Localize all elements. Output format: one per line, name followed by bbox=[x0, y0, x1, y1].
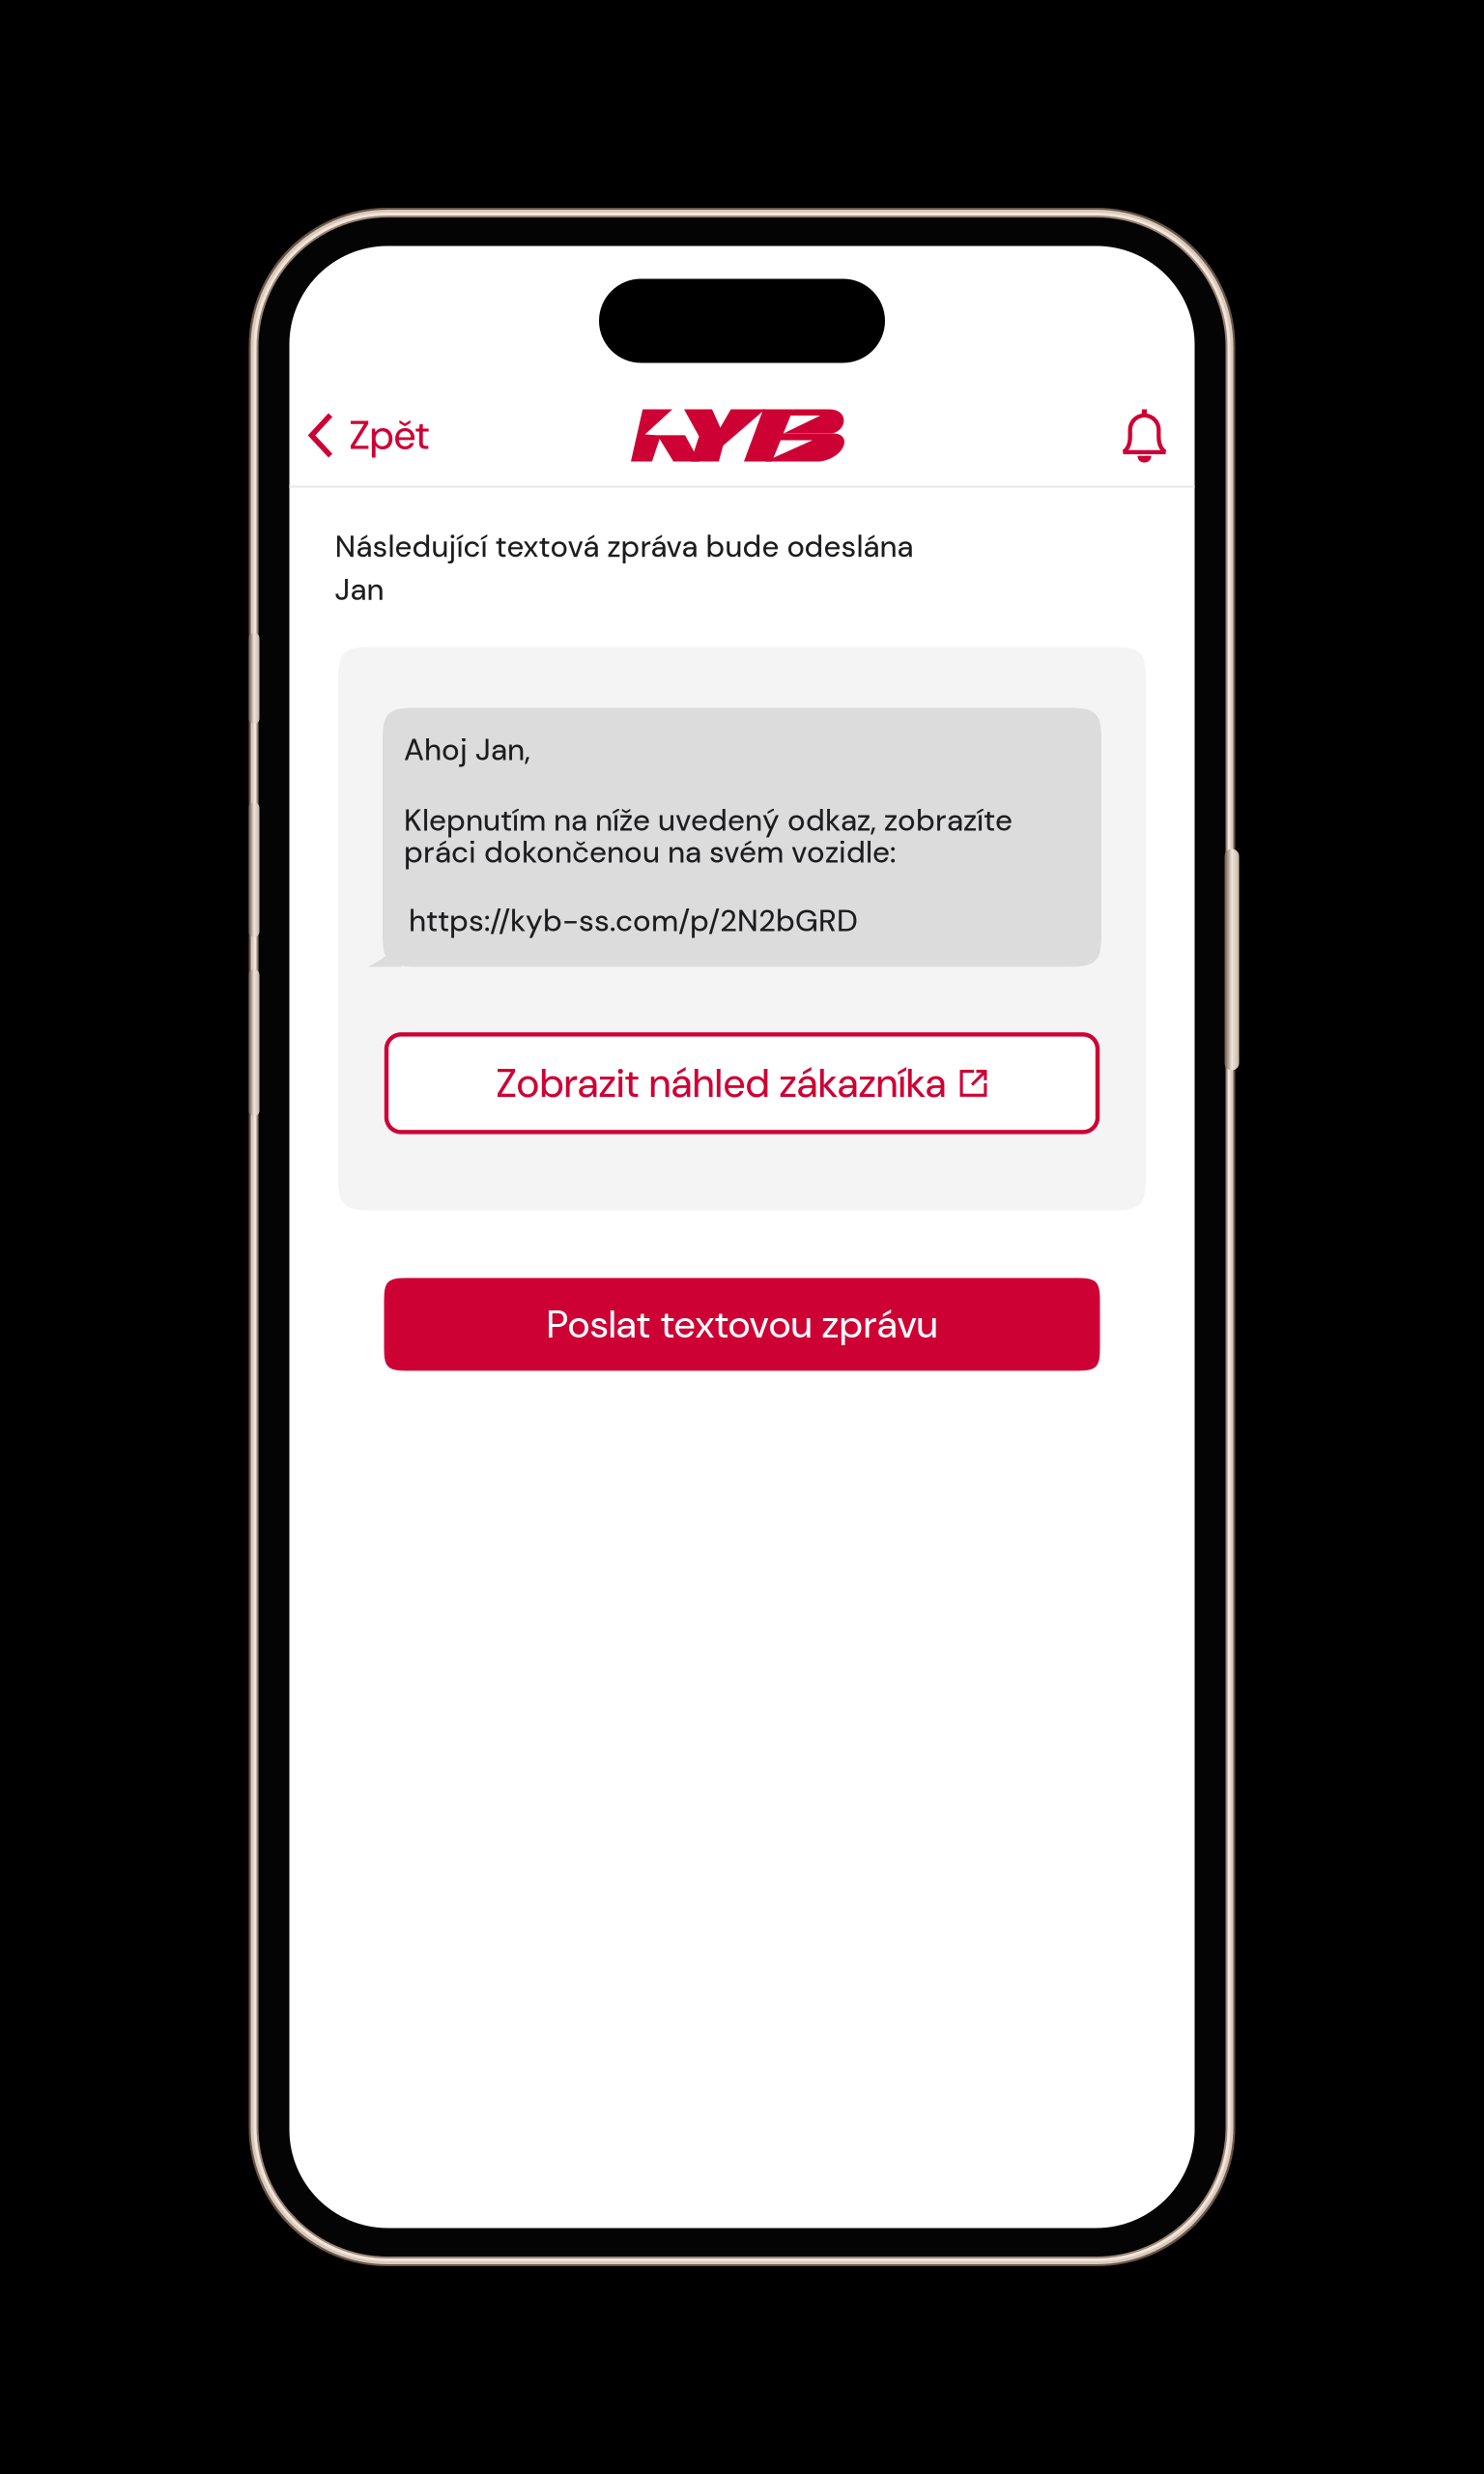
button[interactable]: Poslat textovou zprávu bbox=[384, 1278, 1100, 1371]
staticText: Zpět bbox=[349, 409, 429, 461]
staticText: práci dokončenou na svém vozidle: bbox=[404, 833, 896, 872]
button[interactable]: Zpět bbox=[289, 385, 451, 486]
button[interactable]: Notifications bbox=[1094, 385, 1195, 486]
staticText: Ahoj Jan, bbox=[404, 730, 530, 770]
staticText: https://kyb-ss.com/p/2N2bGRD bbox=[409, 901, 858, 941]
staticText: Poslat textovou zprávu bbox=[546, 1299, 938, 1350]
button[interactable]: Zobrazit náhled zákazníka bbox=[386, 1034, 1098, 1132]
staticText: Následující textová zpráva bude odeslána bbox=[335, 527, 913, 566]
staticText: Zobrazit náhled zákazníka bbox=[496, 1057, 946, 1109]
staticText: Jan bbox=[335, 570, 384, 609]
staticText: Klepnutím na níže uvedený odkaz, zobrazí… bbox=[404, 801, 1013, 840]
